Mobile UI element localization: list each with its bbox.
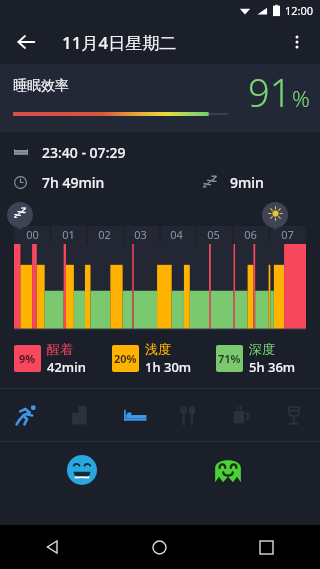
button[interactable]: Activity: [0, 389, 54, 441]
staticText: 42min: [47, 358, 86, 376]
staticText: 00: [26, 227, 39, 242]
staticText: 9%: [19, 351, 36, 366]
staticText: 9min: [230, 173, 264, 192]
button[interactable]: 23:40 - 07:29: [0, 140, 320, 164]
staticText: 1h 30m: [145, 358, 192, 376]
button[interactable]: 20%: [112, 341, 192, 376]
staticText: 20%: [114, 351, 137, 366]
staticText: 07: [281, 227, 294, 242]
staticText: 71%: [218, 351, 241, 366]
button[interactable]: Home: [106, 525, 213, 569]
button[interactable]: 71%: [216, 341, 296, 376]
button[interactable]: Ghost: [210, 452, 246, 488]
button[interactable]: Back: [8, 24, 44, 60]
staticText: 11月4日星期二: [62, 31, 177, 54]
staticText: 睡眠效率: [13, 77, 69, 95]
staticText: 7h 49min: [42, 173, 105, 192]
button[interactable]: 7h 49min: [0, 170, 320, 194]
staticText: 01: [62, 227, 75, 242]
button[interactable]: Sleep start: [7, 202, 33, 234]
button[interactable]: Bed: [108, 389, 161, 441]
button[interactable]: Back: [0, 525, 106, 569]
staticText: 06: [244, 227, 257, 242]
staticText: 浅度: [145, 341, 171, 357]
button[interactable]: 睡眠效率: [0, 64, 320, 132]
staticText: 05: [207, 227, 220, 242]
staticText: 04: [170, 227, 183, 242]
button[interactable]: 9%: [14, 341, 86, 376]
staticText: 91: [248, 66, 292, 118]
button[interactable]: City: [54, 389, 108, 441]
staticText: 深度: [249, 341, 275, 357]
button[interactable]: Wine: [267, 389, 320, 441]
staticText: 02: [98, 227, 111, 242]
button[interactable]: Recents: [213, 525, 320, 569]
button[interactable]: Wake up: [262, 202, 288, 234]
staticText: 5h 36m: [249, 358, 296, 376]
button[interactable]: Coffee: [214, 389, 267, 441]
staticText: 23:40 - 07:29: [42, 143, 126, 162]
staticText: %: [292, 83, 310, 113]
staticText: 醒着: [47, 341, 73, 357]
staticText: 03: [134, 227, 147, 242]
button[interactable]: More options: [280, 25, 314, 59]
staticText: 12:00: [285, 3, 314, 18]
button[interactable]: Mood happy: [64, 452, 100, 488]
button[interactable]: Meal: [161, 389, 214, 441]
